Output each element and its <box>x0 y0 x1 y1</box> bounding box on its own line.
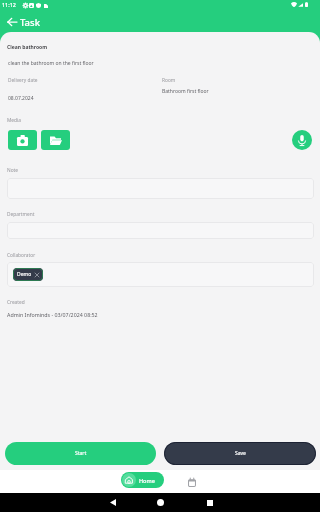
staticText: Clean bathroom <box>7 44 48 51</box>
button[interactable]: Calendar <box>183 474 200 491</box>
staticText: Demo <box>17 271 32 278</box>
staticText: Delivery date <box>8 77 38 84</box>
button[interactable]: Home <box>151 493 169 512</box>
staticText: Created <box>7 299 25 306</box>
button[interactable]: Open files <box>41 130 70 150</box>
button[interactable]: Save <box>164 442 316 465</box>
staticText: clean the bathroom on the first floor <box>8 60 94 67</box>
staticText: 08.07.2024 <box>8 95 34 102</box>
button[interactable]: Home <box>121 472 164 488</box>
staticText: Department <box>7 211 35 218</box>
button[interactable]: Text field <box>7 178 314 199</box>
button[interactable]: Text field <box>7 222 314 239</box>
staticText: 11:12 <box>2 1 16 8</box>
staticText: Room <box>162 77 176 84</box>
staticText: Note <box>7 167 18 174</box>
button[interactable]: Back <box>104 493 122 512</box>
staticText: Save <box>235 450 246 457</box>
staticText: Collaborator <box>7 252 36 259</box>
staticText: Start <box>75 450 87 457</box>
button[interactable]: Demo <box>13 268 43 281</box>
staticText: Media <box>7 117 21 124</box>
button[interactable]: Back <box>3 13 21 31</box>
button[interactable]: Recent apps <box>201 493 219 512</box>
staticText: Bathroom first floor <box>162 88 209 95</box>
button[interactable]: Record audio <box>292 130 312 150</box>
staticText: Home <box>139 477 155 484</box>
button[interactable]: Take photo <box>8 130 37 150</box>
staticText: Admin Infominds - 03/07/2024 08:52 <box>7 311 98 318</box>
staticText: Task <box>20 16 40 29</box>
button[interactable]: Start <box>5 442 156 465</box>
